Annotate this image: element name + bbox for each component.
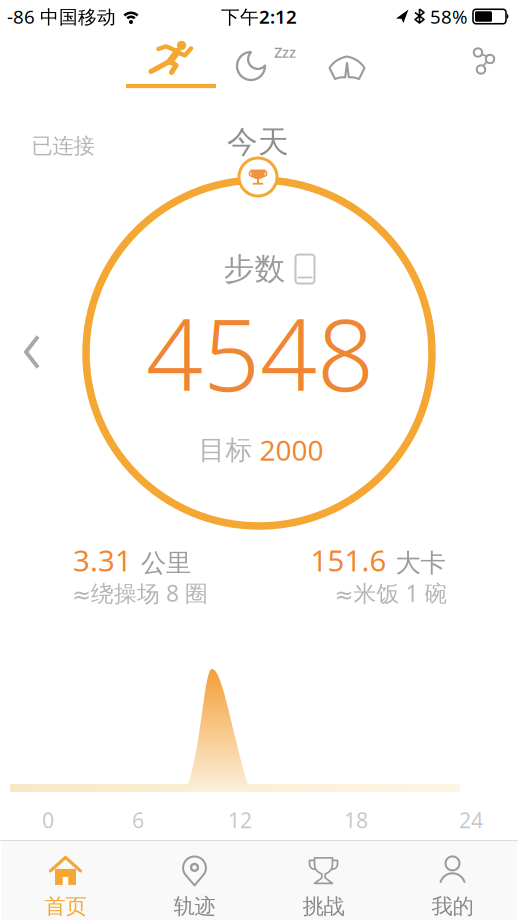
staticText: 151.6 — [310, 540, 386, 579]
staticText: 3.31 — [73, 540, 132, 579]
button[interactable]: 步数 — [126, 40, 216, 88]
staticText: ≈米饭 1 碗 — [334, 578, 447, 608]
staticText: Zzz — [274, 42, 296, 62]
staticText: 我的 — [431, 893, 473, 920]
staticText: 58% — [430, 4, 468, 29]
staticText: -86 中国移动 — [7, 4, 116, 29]
staticText: 公里 — [141, 547, 191, 578]
button[interactable]: 前一天 — [17, 330, 47, 374]
button[interactable]: 分享 — [471, 47, 497, 75]
button[interactable]: 首页 — [1, 843, 130, 917]
staticText: 首页 — [44, 893, 86, 920]
staticText: 6 — [132, 806, 144, 834]
staticText: 2000 — [259, 431, 323, 469]
button[interactable]: 我的 — [388, 843, 517, 917]
staticText: 12 — [228, 806, 252, 834]
staticText: 4548 — [146, 286, 374, 419]
staticText: 轨迹 — [173, 893, 215, 920]
staticText: 18 — [344, 806, 368, 834]
staticText: 步数 — [223, 250, 285, 288]
button[interactable]: 轨迹 — [130, 843, 259, 917]
staticText: 24 — [459, 806, 483, 834]
staticText: 大卡 — [395, 547, 445, 578]
button[interactable]: 睡眠 — [235, 46, 291, 84]
staticText: ≈绕操场 8 圈 — [72, 578, 208, 608]
staticText: 目标 — [198, 434, 252, 466]
staticText: 0 — [42, 806, 54, 834]
button[interactable]: 体重 — [327, 53, 367, 82]
staticText: 今天 — [227, 123, 289, 161]
button[interactable]: 挑战 — [259, 843, 388, 917]
staticText: 下午2:12 — [221, 4, 297, 29]
staticText: 已连接 — [31, 133, 94, 159]
staticText: 挑战 — [302, 893, 344, 920]
